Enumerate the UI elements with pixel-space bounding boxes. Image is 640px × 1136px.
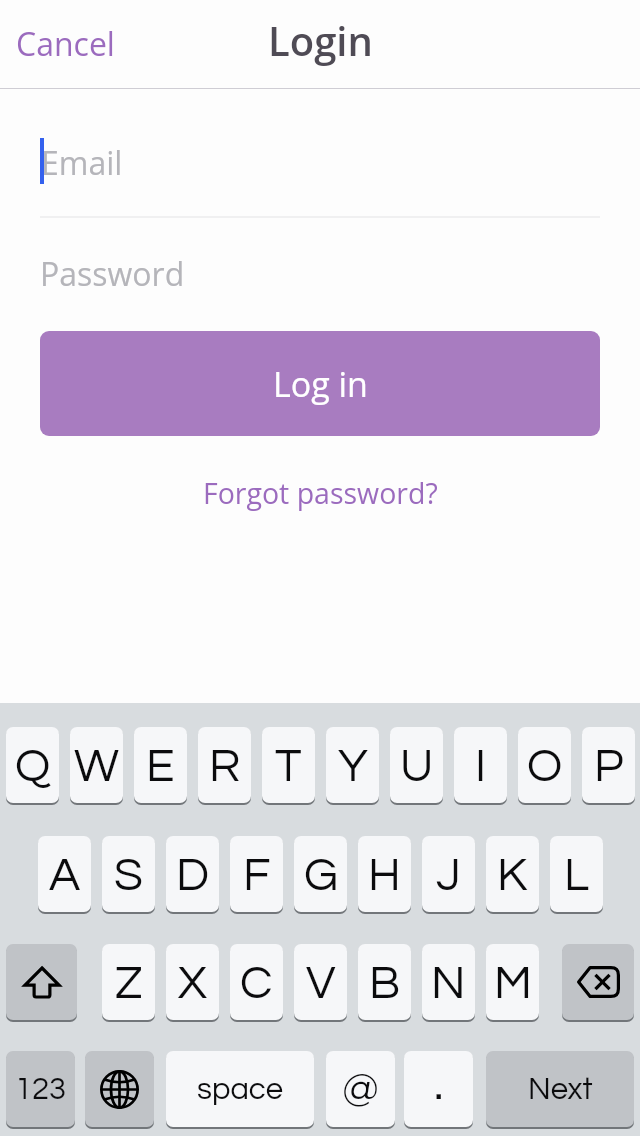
staticText: W xyxy=(74,742,120,790)
staticText: R xyxy=(209,742,241,790)
staticText: C xyxy=(240,959,273,1007)
button[interactable]: B xyxy=(358,944,411,1020)
button[interactable]: M xyxy=(486,944,539,1020)
button[interactable]: R xyxy=(198,727,251,803)
button[interactable]: Log in xyxy=(40,331,600,436)
staticText: P xyxy=(594,742,624,790)
staticText: V xyxy=(306,959,336,1007)
staticText: Login xyxy=(268,13,373,67)
staticText: . xyxy=(434,1061,444,1108)
staticText: U xyxy=(400,742,434,790)
button[interactable]: . xyxy=(404,1051,473,1127)
staticText: O xyxy=(527,742,563,790)
button[interactable]: Backspace xyxy=(562,944,634,1020)
button[interactable]: I xyxy=(454,727,507,803)
button[interactable]: Shift xyxy=(6,944,77,1020)
staticText: Email xyxy=(41,141,123,185)
button[interactable]: L xyxy=(550,836,603,912)
button[interactable]: T xyxy=(262,727,315,803)
staticText: T xyxy=(275,742,302,790)
button[interactable]: P xyxy=(582,727,635,803)
staticText: Z xyxy=(115,959,143,1007)
button[interactable]: X xyxy=(166,944,219,1020)
button[interactable]: D xyxy=(166,836,219,912)
staticText: Password xyxy=(40,252,185,296)
staticText: Next xyxy=(528,1074,593,1106)
button[interactable]: G xyxy=(294,836,347,912)
button[interactable]: A xyxy=(38,836,91,912)
staticText: Cancel xyxy=(16,22,115,66)
button[interactable]: Q xyxy=(6,727,59,803)
staticText: K xyxy=(497,851,528,899)
button[interactable]: Forgot password? xyxy=(193,468,448,519)
staticText: Log in xyxy=(273,361,368,407)
button[interactable]: Z xyxy=(102,944,155,1020)
staticText: G xyxy=(304,851,338,899)
staticText: L xyxy=(564,851,590,899)
button[interactable]: U xyxy=(390,727,443,803)
staticText: B xyxy=(369,959,401,1007)
button[interactable]: W xyxy=(70,727,123,803)
button[interactable]: S xyxy=(102,836,155,912)
staticText: H xyxy=(368,851,401,899)
staticText: 123 xyxy=(15,1074,67,1106)
button[interactable]: O xyxy=(518,727,571,803)
button[interactable]: J xyxy=(422,836,475,912)
staticText: A xyxy=(49,851,81,899)
staticText: D xyxy=(176,851,210,899)
staticText: space xyxy=(197,1074,283,1106)
staticText: M xyxy=(494,959,532,1007)
button[interactable]: Y xyxy=(326,727,379,803)
staticText: Y xyxy=(338,742,368,790)
staticText: E xyxy=(146,742,175,790)
button[interactable]: N xyxy=(422,944,475,1020)
button[interactable]: Cancel xyxy=(4,12,127,76)
button[interactable]: Next keyboard xyxy=(85,1051,154,1127)
button[interactable]: space xyxy=(166,1051,314,1127)
staticText: S xyxy=(114,851,143,899)
staticText: Forgot password? xyxy=(203,474,438,513)
button[interactable]: @ xyxy=(326,1051,395,1127)
button[interactable]: C xyxy=(230,944,283,1020)
button[interactable]: E xyxy=(134,727,187,803)
staticText: I xyxy=(475,742,487,790)
button[interactable]: K xyxy=(486,836,539,912)
staticText: X xyxy=(178,959,207,1007)
button[interactable]: Next xyxy=(486,1051,634,1127)
button[interactable]: H xyxy=(358,836,411,912)
staticText: J xyxy=(436,851,461,899)
button[interactable]: 123 xyxy=(6,1051,75,1127)
staticText: N xyxy=(431,959,466,1007)
button[interactable]: V xyxy=(294,944,347,1020)
staticText: Q xyxy=(15,742,51,790)
staticText: @ xyxy=(342,1068,379,1112)
staticText: F xyxy=(243,851,271,899)
button[interactable]: F xyxy=(230,836,283,912)
